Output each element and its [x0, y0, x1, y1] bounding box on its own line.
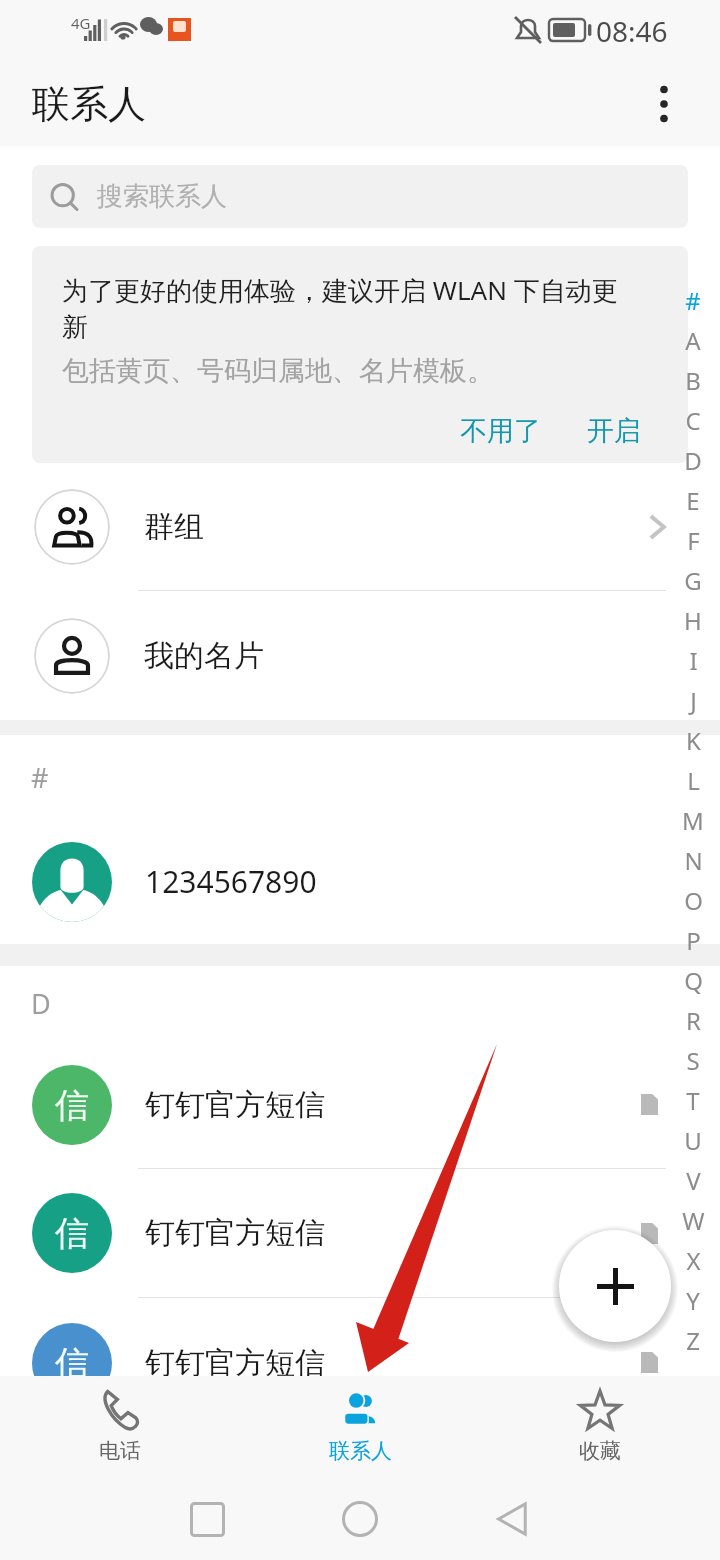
button[interactable]: #	[666, 280, 720, 320]
staticText: 钉钉官方短信	[145, 1344, 325, 1376]
staticText: 钉钉官方短信	[145, 1214, 325, 1252]
button[interactable]: Home	[283, 1478, 436, 1560]
button[interactable]: B	[666, 360, 720, 400]
button[interactable]: J	[666, 680, 720, 720]
staticText: 群组	[144, 508, 204, 546]
staticText: W	[682, 1204, 705, 1237]
staticText: D	[684, 444, 702, 477]
staticText: U	[684, 1124, 702, 1157]
staticText: T	[686, 1084, 700, 1117]
staticText: N	[684, 844, 703, 877]
staticText: P	[686, 924, 701, 957]
staticText: O	[684, 884, 703, 917]
staticText: 不用了	[460, 414, 541, 448]
button[interactable]: Y	[666, 1280, 720, 1320]
staticText: D	[31, 985, 51, 1022]
staticText: 为了更好的使用体验，建议开启 WLAN 下自动更 新	[62, 272, 618, 344]
button[interactable]: I	[666, 640, 720, 680]
button[interactable]: 信	[0, 1169, 720, 1298]
staticText: B	[685, 364, 701, 397]
staticText: 信	[55, 1342, 89, 1376]
button[interactable]: A	[666, 320, 720, 360]
staticText: R	[686, 1004, 701, 1037]
staticText: 4G	[71, 13, 91, 33]
staticText: I	[689, 644, 698, 677]
button[interactable]: 群组	[0, 463, 720, 591]
staticText: Y	[686, 1284, 700, 1317]
button[interactable]: O	[666, 880, 720, 920]
staticText: K	[686, 724, 701, 757]
button[interactable]: 不用了	[448, 402, 553, 460]
staticText: 我的名片	[144, 637, 264, 675]
button[interactable]: X	[666, 1240, 720, 1280]
button[interactable]: 电话	[0, 1376, 240, 1478]
staticText: 1234567890	[145, 861, 317, 902]
staticText: 电话	[99, 1438, 141, 1464]
button[interactable]: S	[666, 1040, 720, 1080]
button[interactable]: H	[666, 600, 720, 640]
button[interactable]: 开启	[575, 402, 653, 460]
button[interactable]: Recents	[131, 1478, 283, 1560]
staticText: 包括黄页、号码归属地、名片模板。	[62, 354, 494, 388]
staticText: 开启	[587, 414, 641, 448]
button[interactable]: W	[666, 1200, 720, 1240]
button[interactable]: Z	[666, 1320, 720, 1360]
button[interactable]: 联系人	[240, 1376, 480, 1478]
staticText: F	[687, 524, 700, 557]
button[interactable]: K	[666, 720, 720, 760]
staticText: Q	[684, 964, 703, 997]
button[interactable]: E	[666, 480, 720, 520]
button[interactable]: Back	[436, 1478, 589, 1560]
button[interactable]: F	[666, 520, 720, 560]
button[interactable]: 信	[0, 1041, 720, 1169]
button[interactable]: 1234567890	[0, 819, 720, 944]
staticText: S	[686, 1044, 700, 1077]
button[interactable]: T	[666, 1080, 720, 1120]
button[interactable]: 信	[0, 1298, 720, 1376]
staticText: 搜索联系人	[97, 180, 227, 213]
button[interactable]: N	[666, 840, 720, 880]
staticText: H	[684, 604, 702, 637]
staticText: E	[686, 484, 700, 517]
button[interactable]: U	[666, 1120, 720, 1160]
button[interactable]: 收藏	[480, 1376, 720, 1478]
button[interactable]: P	[666, 920, 720, 960]
staticText: #	[31, 759, 49, 796]
staticText: L	[687, 764, 700, 797]
button[interactable]: 搜索联系人	[32, 165, 688, 228]
staticText: #	[685, 284, 701, 317]
button[interactable]: L	[666, 760, 720, 800]
staticText: G	[684, 564, 702, 597]
staticText: 信	[55, 1212, 89, 1255]
button[interactable]: 我的名片	[0, 591, 720, 720]
staticText: J	[690, 684, 697, 717]
staticText: Z	[686, 1324, 700, 1357]
staticText: 08:46	[596, 12, 668, 50]
button[interactable]: G	[666, 560, 720, 600]
staticText: V	[686, 1164, 701, 1197]
button[interactable]: D	[666, 440, 720, 480]
button[interactable]: Add contact	[559, 1230, 671, 1342]
staticText: M	[682, 804, 704, 837]
button[interactable]: R	[666, 1000, 720, 1040]
staticText: 信	[55, 1084, 89, 1127]
button[interactable]: M	[666, 800, 720, 840]
button[interactable]: C	[666, 400, 720, 440]
staticText: A	[685, 324, 701, 357]
staticText: X	[686, 1244, 701, 1277]
staticText: C	[685, 404, 701, 437]
staticText: 联系人	[329, 1438, 392, 1464]
staticText: 收藏	[579, 1438, 621, 1464]
button[interactable]: V	[666, 1160, 720, 1200]
button[interactable]: Q	[666, 960, 720, 1000]
staticText: 钉钉官方短信	[145, 1086, 325, 1124]
staticText: 联系人	[32, 80, 146, 128]
button[interactable]: More options	[632, 72, 696, 136]
